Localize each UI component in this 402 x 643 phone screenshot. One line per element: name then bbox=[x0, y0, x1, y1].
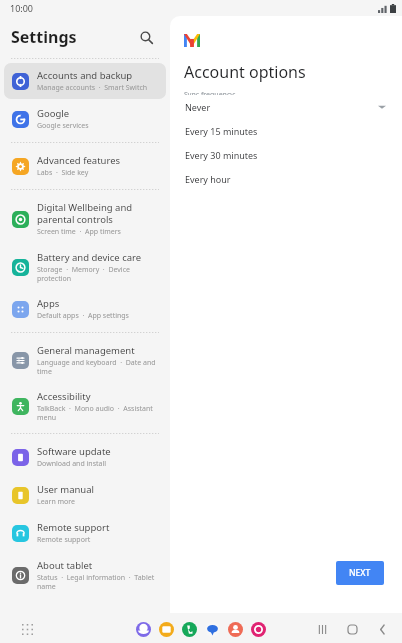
staticText: General management bbox=[37, 344, 135, 357]
button[interactable]: Google bbox=[4, 101, 166, 137]
staticText: NEXT bbox=[349, 567, 371, 579]
button[interactable]: About tablet bbox=[4, 553, 166, 597]
button[interactable]: Camera bbox=[251, 622, 266, 637]
button[interactable]: Battery and device care bbox=[4, 245, 166, 289]
staticText: Labs · Side key bbox=[37, 168, 89, 178]
button[interactable]: Recents bbox=[314, 621, 330, 637]
staticText: User manual bbox=[37, 483, 94, 496]
button[interactable]: Every 30 minutes bbox=[175, 143, 360, 167]
button[interactable]: Every hour bbox=[175, 167, 360, 191]
staticText: Never bbox=[185, 101, 211, 113]
button[interactable]: Search bbox=[133, 24, 159, 50]
staticText: 10:00 bbox=[10, 2, 34, 14]
button[interactable]: Accessibility bbox=[4, 384, 166, 428]
staticText: Settings bbox=[11, 26, 77, 48]
button[interactable]: Contacts bbox=[228, 622, 243, 637]
button[interactable]: Phone bbox=[182, 622, 197, 637]
button[interactable]: My Files bbox=[159, 622, 174, 637]
button[interactable]: Messages bbox=[205, 622, 220, 637]
button[interactable]: Apps bbox=[4, 291, 166, 327]
staticText: Sync frequency: bbox=[184, 90, 236, 100]
staticText: Screen time · App timers bbox=[37, 227, 121, 237]
button[interactable]: Every 15 minutes bbox=[175, 119, 360, 143]
staticText: Every 30 minutes bbox=[185, 149, 258, 161]
staticText: Manage accounts · Smart Switch bbox=[37, 83, 148, 93]
staticText: Remote support bbox=[37, 535, 91, 545]
staticText: Advanced features bbox=[37, 154, 121, 167]
button[interactable]: Advanced features bbox=[4, 148, 166, 184]
button[interactable]: Remote support bbox=[4, 515, 166, 551]
button[interactable]: User manual bbox=[4, 477, 166, 513]
button[interactable]: All apps bbox=[18, 620, 36, 638]
staticText: Accounts and backup bbox=[37, 69, 133, 82]
staticText: Accessibility bbox=[37, 390, 91, 403]
staticText: Every 15 minutes bbox=[185, 125, 258, 137]
button[interactable]: NEXT bbox=[336, 561, 384, 585]
button[interactable]: Digital Wellbeing and parental controls bbox=[4, 195, 166, 243]
button[interactable]: Back bbox=[374, 621, 390, 637]
button[interactable]: Home bbox=[344, 621, 360, 637]
staticText: Status · Legal information · Tablet name bbox=[37, 573, 158, 591]
staticText: Google services bbox=[37, 121, 89, 131]
staticText: Remote support bbox=[37, 521, 110, 534]
staticText: TalkBack · Mono audio · Assistant menu bbox=[37, 404, 158, 422]
staticText: Battery and device care bbox=[37, 251, 142, 264]
staticText: About tablet bbox=[37, 559, 93, 572]
staticText: connected to WiFi bbox=[204, 152, 276, 164]
staticText: Every hour bbox=[185, 173, 231, 185]
button[interactable]: Software update bbox=[4, 439, 166, 475]
staticText: Storage · Memory · Device protection bbox=[37, 265, 158, 283]
staticText: Software update bbox=[37, 445, 111, 458]
staticText: Google bbox=[37, 107, 70, 120]
staticText: Apps bbox=[37, 297, 60, 310]
staticText: Download and install bbox=[37, 459, 107, 469]
staticText: Learn more bbox=[37, 497, 76, 507]
button[interactable]: Accounts and backup bbox=[4, 63, 166, 99]
staticText: Digital Wellbeing and parental controls bbox=[37, 201, 158, 226]
staticText: Account options bbox=[184, 61, 306, 83]
staticText: Default apps · App settings bbox=[37, 311, 129, 321]
button[interactable]: Sync only when connected to WiFi bbox=[184, 155, 195, 162]
button[interactable]: Never bbox=[175, 95, 360, 119]
staticText: Language and keyboard · Date and time bbox=[37, 358, 158, 376]
button[interactable]: General management bbox=[4, 338, 166, 382]
button[interactable]: Internet bbox=[136, 622, 151, 637]
